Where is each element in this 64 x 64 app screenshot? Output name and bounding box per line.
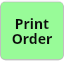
- button[interactable]: Print Order: [0, 0, 64, 64]
- staticText: Print Order: [0, 14, 64, 48]
